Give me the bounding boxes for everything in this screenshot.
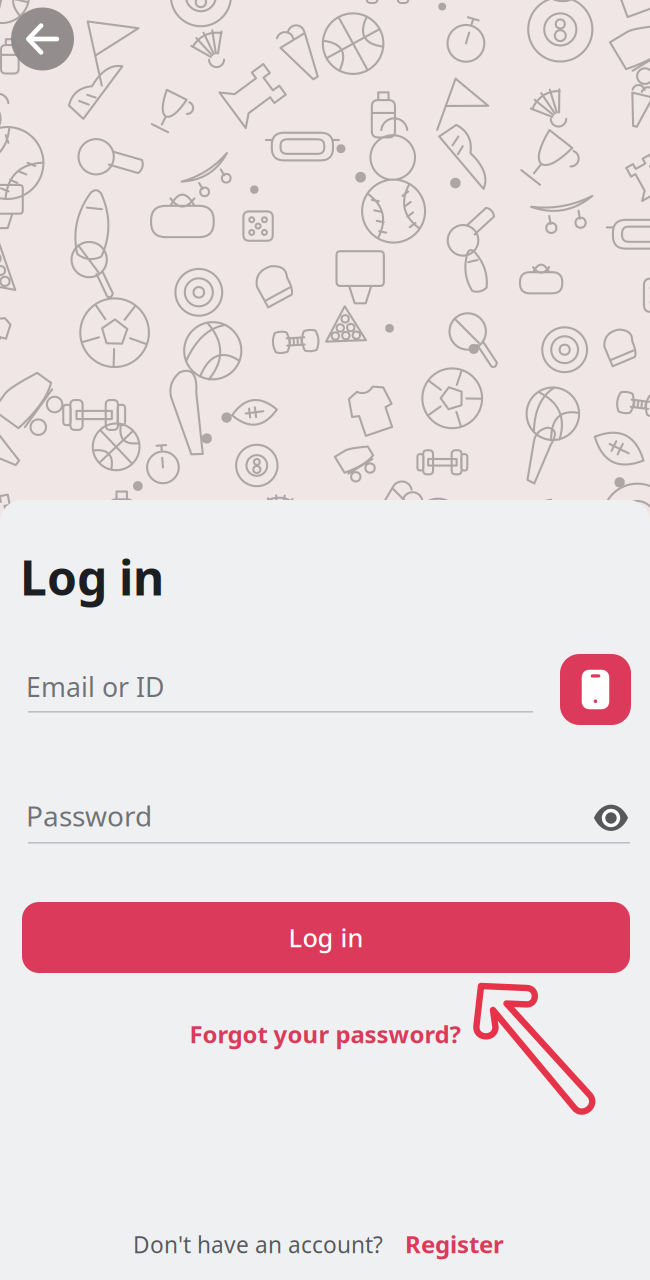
staticText: Email or ID bbox=[26, 669, 164, 704]
staticText: Don't have an account? bbox=[133, 1229, 383, 1259]
button[interactable]: Register bbox=[405, 1228, 504, 1260]
button[interactable]: Back bbox=[11, 7, 74, 71]
staticText: Log in bbox=[20, 545, 164, 609]
button[interactable]: Forgot your password? bbox=[0, 1014, 650, 1054]
button[interactable]: Show password bbox=[585, 798, 637, 838]
button[interactable]: Sign in with phone number bbox=[560, 654, 631, 725]
staticText: Password bbox=[26, 797, 152, 834]
staticText: Forgot your password? bbox=[189, 1018, 460, 1050]
staticText: Register bbox=[405, 1228, 504, 1260]
staticText: Log in bbox=[288, 921, 363, 954]
button[interactable]: Log in bbox=[22, 902, 630, 973]
